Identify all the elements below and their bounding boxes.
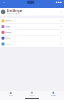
staticText: Display — [6, 26, 11, 27]
button[interactable]: Search — [21, 92, 43, 96]
staticText: Apple Account, iCloud — [6, 13, 20, 15]
staticText: Focus — [6, 37, 11, 39]
button[interactable]: Profile — [43, 92, 64, 96]
staticText: Sounds — [6, 31, 12, 33]
staticText: 9:41 — [3, 1, 6, 3]
staticText: Profile — [51, 94, 56, 96]
staticText: General — [6, 20, 12, 22]
button[interactable]: Sounds — [0, 30, 64, 35]
button[interactable]: Privacy — [0, 41, 64, 47]
button[interactable]: General — [0, 18, 64, 24]
button[interactable]: Alex Morgan — [0, 8, 64, 16]
staticText: Alex Morgan — [6, 9, 22, 13]
button[interactable]: Home — [0, 92, 21, 96]
staticText: Home — [9, 94, 13, 96]
staticText: Search — [29, 94, 35, 96]
staticText: Privacy — [6, 43, 12, 45]
button[interactable]: Focus — [0, 35, 64, 41]
button[interactable]: Display — [0, 24, 64, 29]
